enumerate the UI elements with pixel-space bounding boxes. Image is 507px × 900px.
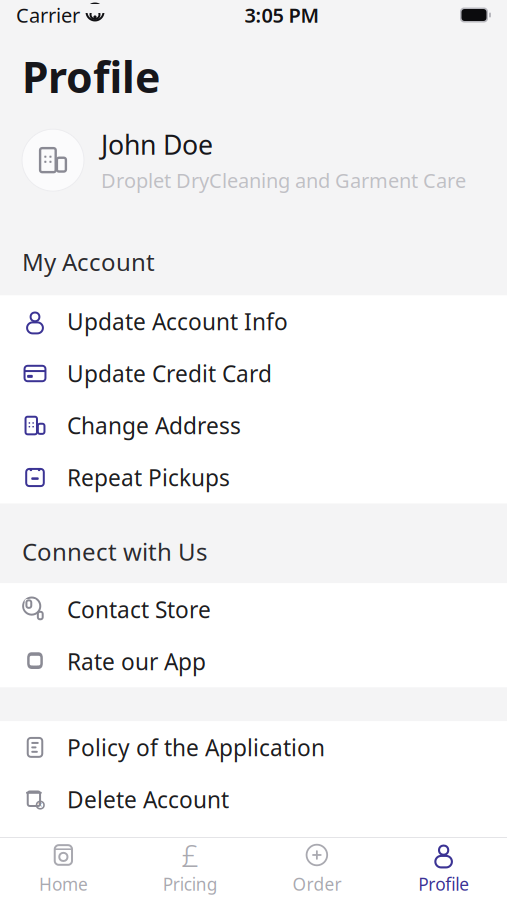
staticText: Delete Account bbox=[67, 784, 229, 814]
button[interactable]: Change Address bbox=[0, 399, 507, 451]
staticText: Connect with Us bbox=[22, 535, 207, 567]
button[interactable]: Profile bbox=[380, 838, 507, 900]
button[interactable]: Policy of the Application bbox=[0, 721, 507, 773]
staticText: Home bbox=[39, 872, 88, 895]
staticText: 3:05 PM bbox=[244, 2, 319, 28]
button[interactable]: Order bbox=[253, 838, 380, 900]
button[interactable]: Home bbox=[0, 838, 127, 900]
staticText: Update Account Info bbox=[67, 306, 288, 337]
staticText: Profile bbox=[22, 48, 160, 105]
button[interactable]: Log Out bbox=[0, 825, 507, 877]
button[interactable]: £ bbox=[127, 838, 254, 900]
staticText: Profile bbox=[418, 872, 469, 895]
staticText: Order bbox=[292, 872, 341, 895]
button[interactable]: Update Credit Card bbox=[0, 347, 507, 399]
staticText: John Doe bbox=[101, 127, 213, 162]
staticText: Carrier bbox=[16, 2, 80, 28]
button[interactable]: Rate our App bbox=[0, 635, 507, 687]
button[interactable]: Contact Store bbox=[0, 583, 507, 635]
staticText: My Account bbox=[22, 246, 155, 277]
staticText: Policy of the Application bbox=[67, 732, 325, 762]
button[interactable]: Repeat Pickups bbox=[0, 451, 507, 503]
button[interactable]: Update Account Info bbox=[0, 295, 507, 347]
staticText: Log Out bbox=[67, 836, 153, 866]
button[interactable]: × bbox=[0, 773, 507, 825]
staticText: Droplet DryCleaning and Garment Care bbox=[101, 167, 466, 194]
staticText: Repeat Pickups bbox=[67, 462, 230, 493]
staticText: £ bbox=[181, 835, 199, 875]
staticText: Pricing bbox=[163, 872, 218, 895]
staticText: Contact Store bbox=[67, 594, 211, 624]
staticText: Change Address bbox=[67, 410, 241, 441]
staticText: Rate our App bbox=[67, 646, 206, 676]
staticText: × bbox=[38, 800, 43, 810]
staticText: Update Credit Card bbox=[67, 358, 272, 389]
